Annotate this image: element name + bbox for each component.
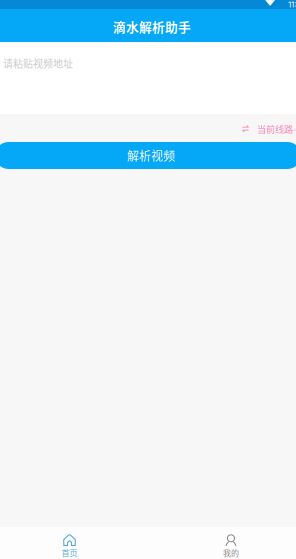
staticText: 我的	[223, 547, 239, 559]
staticText: 11:	[288, 0, 296, 9]
button[interactable]: 首页	[0, 527, 139, 559]
staticText: 解析视频	[127, 147, 175, 164]
staticText: 滴水解析助手	[113, 17, 191, 36]
button[interactable]: 当前线路-1	[0, 114, 296, 142]
staticText: 首页	[61, 547, 77, 558]
button[interactable]: 我的	[166, 527, 296, 559]
button[interactable]: 解析视频	[0, 142, 296, 169]
staticText: 请粘贴视频地址	[3, 56, 73, 70]
staticText: 当前线路-1	[257, 122, 296, 135]
